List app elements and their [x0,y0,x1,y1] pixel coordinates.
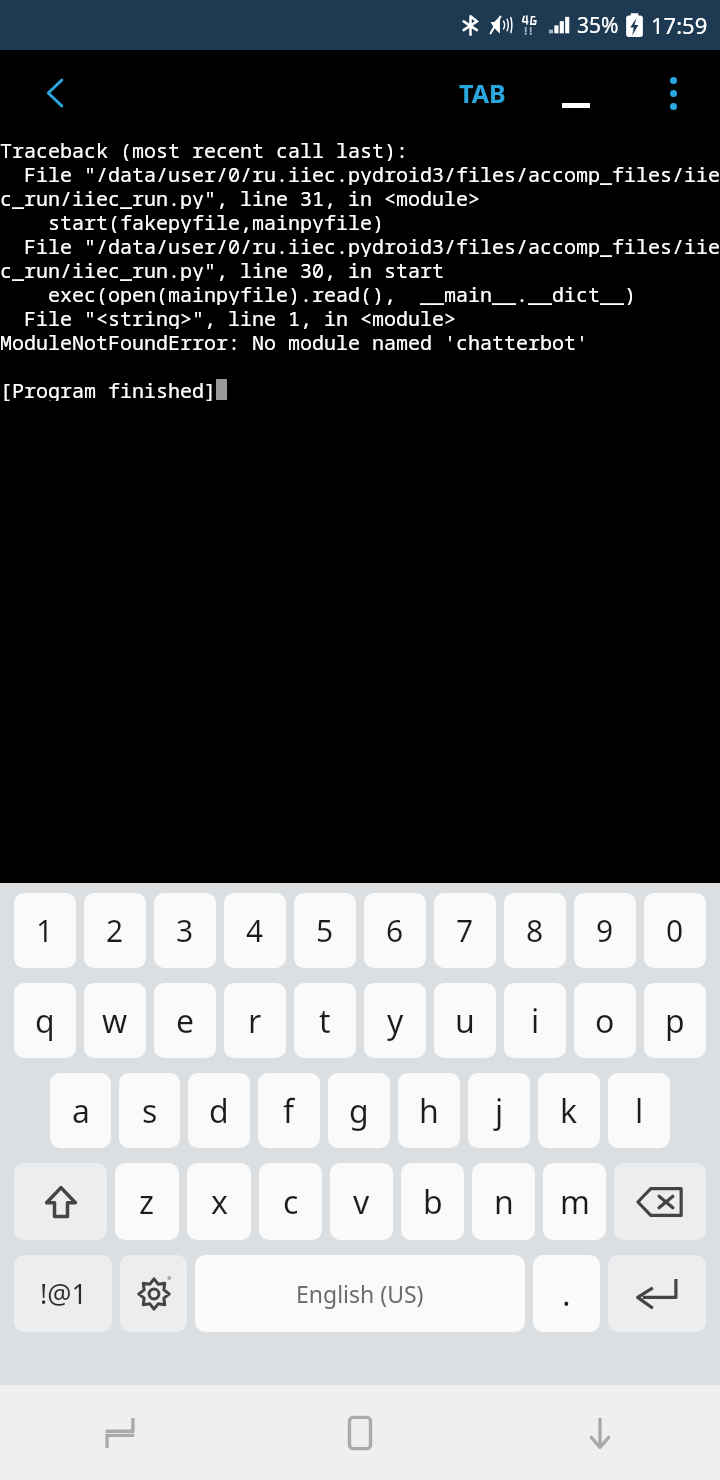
button[interactable]: More options [637,57,709,129]
staticText: 5 [316,910,334,951]
staticText: start(fakepyfile,mainpyfile) [0,209,384,233]
button[interactable]: o [574,983,636,1058]
button[interactable]: Hide keyboard [480,1385,720,1480]
staticText: t [319,999,331,1043]
button[interactable]: f [258,1073,320,1148]
staticText: k [560,1089,578,1133]
button[interactable]: j [468,1073,530,1148]
button[interactable]: 3 [154,893,216,968]
button[interactable]: s [119,1073,180,1148]
button[interactable]: 9 [574,893,636,968]
button[interactable]: b [401,1163,464,1240]
button[interactable]: w [84,983,146,1058]
staticText: [Program finished] [0,377,216,401]
staticText: l [635,1089,644,1133]
staticText: Traceback (most recent call last): [0,137,408,161]
button[interactable]: . [533,1255,600,1332]
staticText: English (US) [296,1278,424,1309]
button[interactable]: Back [19,57,91,129]
staticText: File "<string>", line 1, in <module> [0,305,456,329]
staticText: 6 [386,910,404,951]
staticText: c [283,1180,299,1224]
staticText: n [494,1180,514,1224]
staticText: 2 [106,910,124,951]
button[interactable]: Keyboard settings [120,1255,187,1332]
button[interactable]: TAB [436,57,528,129]
staticText: TAB [459,76,506,110]
button[interactable]: i [504,983,566,1058]
button[interactable]: c [259,1163,322,1240]
button[interactable]: Backspace [614,1163,706,1240]
staticText: 3 [176,910,194,951]
staticText: u [455,999,475,1043]
button[interactable]: a [50,1073,111,1148]
staticText: 17:59 [651,10,708,40]
button[interactable]: Traceback (most recent call last): [0,135,720,883]
staticText: exec(open(mainpyfile).read(), __main__._… [0,281,636,305]
button[interactable]: h [398,1073,460,1148]
staticText: q [35,999,55,1043]
button[interactable]: 0 [644,893,706,968]
staticText: 8 [526,910,544,951]
button[interactable]: 5 [294,893,356,968]
staticText: 0 [666,910,684,951]
staticText: y [387,999,404,1043]
button[interactable]: 1 [14,893,76,968]
button[interactable]: d [188,1073,250,1148]
button[interactable]: t [294,983,356,1058]
staticText: ModuleNotFoundError: No module named 'ch… [0,329,588,353]
button[interactable]: 6 [364,893,426,968]
staticText: 1 [36,910,54,951]
button[interactable]: Enter [608,1255,706,1332]
staticText: 4 [246,910,264,951]
button[interactable]: q [14,983,76,1058]
button[interactable]: Minimize [540,57,612,129]
staticText: e [176,999,195,1043]
button[interactable]: l [608,1073,670,1148]
staticText: w [102,999,128,1043]
staticText: v [353,1180,370,1224]
staticText: 9 [596,910,614,951]
staticText: File "/data/user/0/ru.iiec.pydroid3/file… [0,161,720,185]
staticText: s [142,1089,158,1133]
button[interactable]: y [364,983,426,1058]
staticText: d [209,1089,229,1133]
button[interactable]: n [472,1163,535,1240]
button[interactable]: e [154,983,216,1058]
button[interactable]: Recents [0,1385,240,1480]
button[interactable]: 7 [434,893,496,968]
button[interactable]: !@1 [14,1255,112,1332]
staticText: z [139,1180,155,1224]
staticText: b [423,1180,443,1224]
staticText: p [665,999,685,1043]
button[interactable]: r [224,983,286,1058]
staticText: g [349,1089,369,1133]
button[interactable]: 8 [504,893,566,968]
staticText: j [495,1089,504,1133]
staticText: c_run/iiec_run.py", line 31, in <module> [0,185,480,209]
button[interactable]: English (US) [195,1255,525,1332]
staticText: 35% [577,11,619,40]
staticText: . [562,1272,571,1316]
staticText: File "/data/user/0/ru.iiec.pydroid3/file… [0,233,720,257]
staticText: f [283,1089,295,1133]
staticText: r [248,999,262,1043]
button[interactable]: Shift [14,1163,107,1240]
staticText: 7 [456,910,474,951]
button[interactable]: v [330,1163,393,1240]
button[interactable]: Home [240,1385,480,1480]
staticText: i [531,999,540,1043]
button[interactable]: m [543,1163,606,1240]
staticText: m [560,1180,590,1224]
button[interactable]: p [644,983,706,1058]
staticText: !@1 [40,1275,87,1312]
button[interactable]: z [115,1163,179,1240]
staticText: o [595,999,615,1043]
button[interactable]: u [434,983,496,1058]
staticText: a [72,1089,90,1133]
button[interactable]: 2 [84,893,146,968]
button[interactable]: g [328,1073,390,1148]
button[interactable]: 4 [224,893,286,968]
button[interactable]: k [538,1073,600,1148]
button[interactable]: x [187,1163,251,1240]
